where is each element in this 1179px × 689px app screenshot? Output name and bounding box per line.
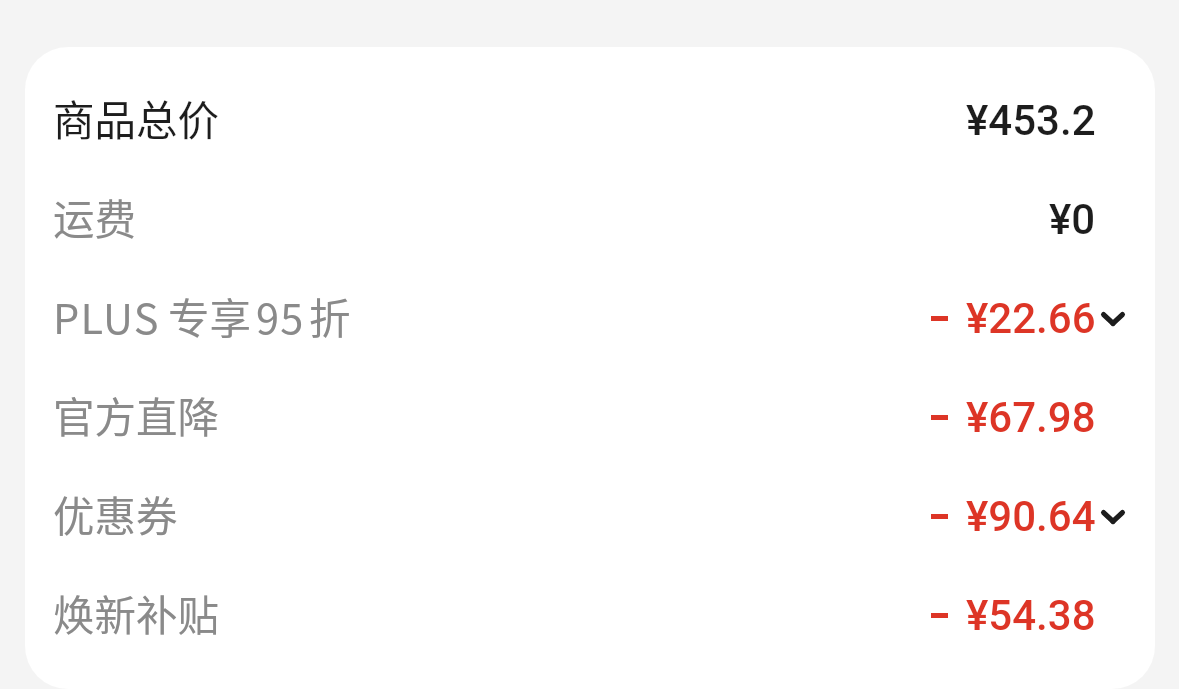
staticText: 优惠券 (53, 484, 178, 544)
staticText: ¥0 (1049, 195, 1096, 244)
staticText: 商品总价 (53, 88, 220, 148)
button[interactable]: 优惠券 (25, 464, 1155, 563)
staticText: 95 (256, 286, 305, 346)
staticText: ¥90.64 (966, 492, 1096, 541)
button[interactable]: 运费 (25, 167, 1155, 266)
staticText: ¥67.98 (966, 393, 1096, 442)
button[interactable]: 官方直降 (25, 365, 1155, 464)
button[interactable]: PLUS (25, 266, 1155, 365)
staticText: 官方直降 (53, 385, 220, 445)
staticText: 折 (309, 286, 351, 346)
button[interactable]: 焕新补贴 (25, 563, 1155, 662)
other: 展开明细 (1101, 312, 1125, 326)
staticText: 专享 (168, 286, 252, 346)
staticText: 焕新补贴 (53, 583, 220, 643)
staticText: PLUS (53, 286, 160, 346)
button[interactable]: 商品总价 (25, 68, 1155, 167)
staticText: ¥54.38 (966, 591, 1096, 640)
staticText: ¥22.66 (966, 294, 1096, 343)
staticText: ¥453.2 (966, 96, 1096, 145)
staticText: 运费 (53, 187, 137, 247)
other: 展开明细 (1101, 510, 1125, 524)
